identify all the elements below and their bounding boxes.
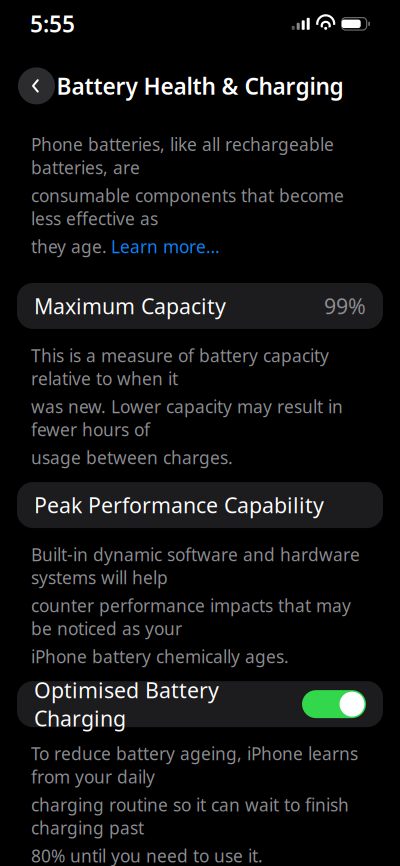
staticText: usage between charges. <box>31 446 233 469</box>
staticText: they age. <box>31 235 107 258</box>
staticText: iPhone battery chemically ages. <box>31 645 289 668</box>
staticText: was new. Lower capacity may result in fe… <box>31 395 343 441</box>
staticText: charging routine so it can wait to finis… <box>31 793 349 839</box>
staticText: Battery Health & Charging <box>56 71 343 101</box>
staticText: To reduce battery ageing, iPhone learns … <box>31 742 358 788</box>
button[interactable]: Maximum Capacity <box>17 283 383 329</box>
button[interactable]: Peak Performance Capability <box>17 482 383 528</box>
staticText: Optimised Battery Charging <box>34 676 219 732</box>
button[interactable]: Back <box>18 67 55 104</box>
staticText: 80% until you need to use it. <box>31 844 263 866</box>
button[interactable]: Learn more… <box>111 235 220 258</box>
staticText: consumable components that become less e… <box>31 184 344 230</box>
staticText: counter performance impacts that may be … <box>31 594 351 640</box>
staticText: This is a measure of battery capacity re… <box>31 344 329 390</box>
staticText: 5:55 <box>30 9 75 39</box>
button[interactable]: Optimised Battery Charging <box>17 681 383 727</box>
staticText: Learn more… <box>111 235 220 258</box>
staticText: Peak Performance Capability <box>34 491 324 519</box>
staticText: Maximum Capacity <box>34 292 226 320</box>
staticText: 99% <box>324 292 366 320</box>
staticText: Phone batteries, like all rechargeable b… <box>31 133 334 179</box>
staticText: Built-in dynamic software and hardware s… <box>31 543 360 589</box>
